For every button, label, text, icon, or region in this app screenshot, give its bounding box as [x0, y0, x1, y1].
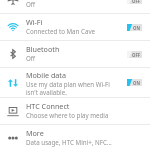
button[interactable]: Switch on: [127, 24, 142, 31]
staticText: Bluetooth: [26, 44, 60, 54]
staticText: Wi-Fi: [26, 17, 43, 27]
staticText: isn't available.: [26, 88, 67, 96]
staticText: Choose where to play media: [26, 111, 109, 119]
button[interactable]: Airplane mode: [0, 0, 150, 13]
button[interactable]: Switch off: [127, 51, 142, 58]
staticText: ON: [133, 80, 140, 86]
staticText: Mobile data: [26, 70, 66, 80]
button[interactable]: Mobile data: [0, 68, 150, 97]
button[interactable]: HTC Connect: [0, 98, 150, 124]
button[interactable]: Switch on: [127, 79, 142, 86]
staticText: HTC Connect: [26, 101, 70, 111]
button[interactable]: Bluetooth: [0, 41, 150, 67]
staticText: Off: [26, 0, 36, 8]
button[interactable]: Wi-Fi: [0, 14, 150, 40]
staticText: OFF: [132, 52, 141, 58]
staticText: More: [26, 128, 44, 138]
button[interactable]: Switch off: [127, 0, 142, 4]
button[interactable]: More: [0, 125, 150, 150]
staticText: OFF: [132, 0, 141, 4]
staticText: Data usage, HTC Mini+, NFC...: [26, 138, 112, 146]
staticText: Off: [26, 54, 36, 62]
staticText: ON: [133, 25, 140, 31]
staticText: Connected to Man Cave: [26, 27, 96, 35]
staticText: Use my data plan when Wi-Fi: [26, 80, 110, 88]
